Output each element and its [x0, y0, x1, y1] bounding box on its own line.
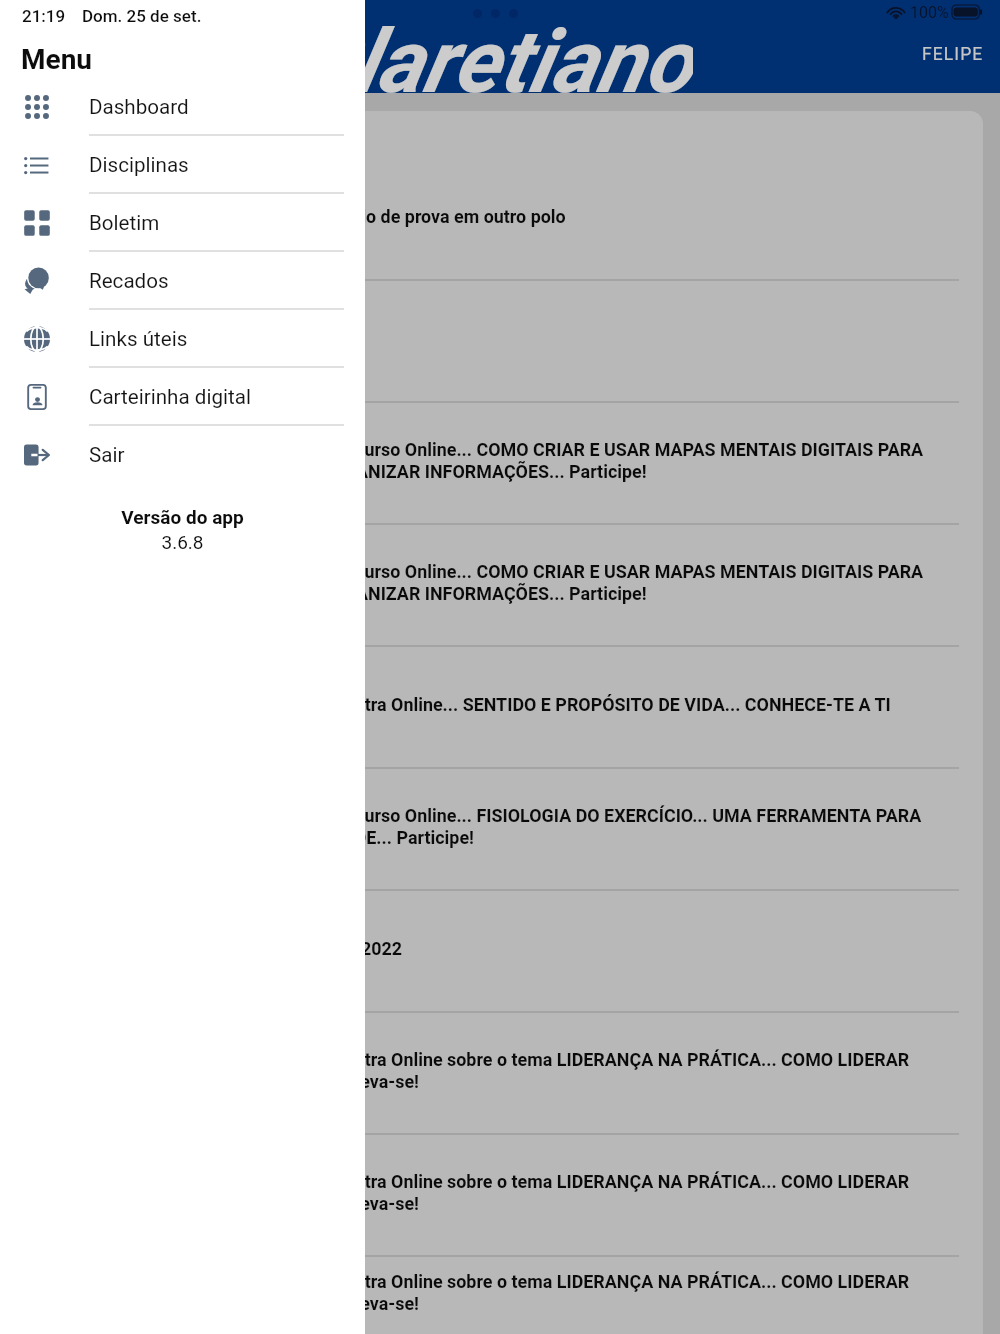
- staticText: Palestra Online sobre o tema LIDERANÇA N…: [320, 1049, 965, 1092]
- button[interactable]: Guia 2022: [17, 891, 983, 1011]
- staticText: Claretiano: [298, 10, 693, 103]
- staticText: Palestra Online sobre o tema LIDERANÇA N…: [320, 1171, 965, 1214]
- button[interactable]: Minicurso Online... FISIOLOGIA DO EXERCÍ…: [17, 769, 983, 889]
- staticText: Guia 2022: [320, 938, 965, 959]
- staticText: Palestra Online sobre o tema LIDERANÇA N…: [320, 1271, 965, 1314]
- button[interactable]: Sair: [0, 426, 365, 484]
- staticText: Minicurso Online... COMO CRIAR E USAR MA…: [320, 439, 965, 482]
- button[interactable]: Disciplinas: [0, 136, 365, 194]
- button[interactable]: Pedido de prova em outro polo: [17, 159, 983, 279]
- button[interactable]: Dashboard: [0, 78, 365, 136]
- button[interactable]: FELIPE: [922, 44, 984, 65]
- button[interactable]: Links úteis: [0, 310, 365, 368]
- staticText: Minicurso Online... COMO CRIAR E USAR MA…: [320, 561, 965, 604]
- staticText: Minicurso Online... FISIOLOGIA DO EXERCÍ…: [320, 805, 965, 848]
- staticText: Dom. 25 de set.: [82, 6, 202, 26]
- button[interactable]: Palestra Online sobre o tema LIDERANÇA N…: [17, 1257, 983, 1334]
- button[interactable]: Palestra Online sobre o tema LIDERANÇA N…: [17, 1013, 983, 1133]
- staticText: Pedido de prova em outro polo: [320, 206, 965, 227]
- staticText: Menu: [21, 43, 93, 76]
- staticText: Versão do app: [0, 506, 365, 528]
- staticText: Disciplinas: [89, 153, 189, 177]
- staticText: Pra: [320, 328, 965, 349]
- staticText: Sair: [89, 443, 125, 467]
- button[interactable]: Carteirinha digital: [0, 368, 365, 426]
- staticText: Boletim: [89, 211, 160, 235]
- button[interactable]: Minicurso Online... COMO CRIAR E USAR MA…: [17, 403, 983, 523]
- staticText: 21:19: [22, 6, 66, 26]
- button[interactable]: Palestra Online... SENTIDO E PROPÓSITO D…: [17, 647, 983, 767]
- button[interactable]: Pra: [17, 281, 983, 401]
- staticText: Links úteis: [89, 327, 188, 351]
- staticText: Palestra Online... SENTIDO E PROPÓSITO D…: [320, 694, 965, 715]
- staticText: FELIPE: [922, 44, 984, 65]
- staticText: Carteirinha digital: [89, 385, 251, 409]
- staticText: Recados: [89, 269, 169, 293]
- button[interactable]: Boletim: [0, 194, 365, 252]
- button[interactable]: Minicurso Online... COMO CRIAR E USAR MA…: [17, 525, 983, 645]
- staticText: 100%: [910, 3, 949, 22]
- staticText: 3.6.8: [0, 531, 365, 553]
- button[interactable]: Recados: [0, 252, 365, 310]
- staticText: Dashboard: [89, 95, 189, 119]
- button[interactable]: Palestra Online sobre o tema LIDERANÇA N…: [17, 1135, 983, 1255]
